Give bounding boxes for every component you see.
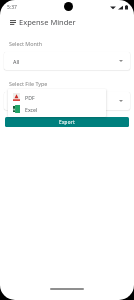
staticText: Select Month [9,40,43,47]
staticText: 5:37 [7,4,17,11]
staticText: PDF [25,94,35,101]
button[interactable]: Excel [8,103,106,115]
button[interactable]: All [4,52,130,70]
button[interactable] [4,92,130,110]
button[interactable]: Menu [3,13,23,31]
staticText: Expense Minder [19,17,76,27]
staticText: Select File Type [9,80,48,87]
staticText: All [13,58,20,65]
staticText: Excel [25,106,38,113]
button[interactable]: PDF [8,91,106,103]
button[interactable]: Export [5,117,129,127]
staticText: Export [59,119,75,125]
